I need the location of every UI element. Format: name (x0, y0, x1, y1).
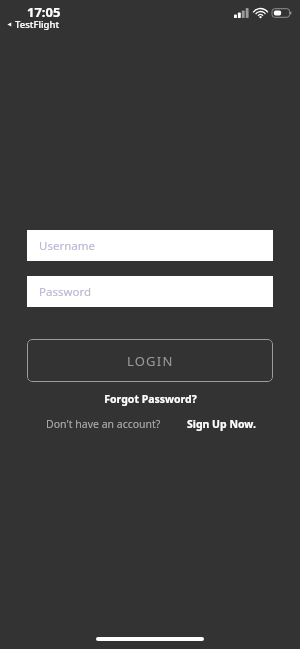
staticText: Don't have an account? (46, 417, 161, 431)
staticText: Forgot Password? (104, 392, 197, 406)
staticText: Password (39, 284, 92, 300)
staticText: Username (39, 238, 95, 254)
staticText: Sign Up Now. (187, 417, 256, 431)
button[interactable]: LOGIN (27, 339, 273, 382)
button[interactable]: Username (27, 230, 273, 261)
button[interactable]: Sign Up Now. (187, 417, 256, 431)
button[interactable]: Back to TestFlight (6, 18, 60, 31)
button[interactable]: Forgot Password? (98, 390, 203, 408)
staticText: LOGIN (127, 352, 174, 370)
staticText: TestFlight (15, 18, 60, 31)
staticText: 17:05 (27, 3, 61, 21)
button[interactable]: Password (27, 276, 273, 307)
